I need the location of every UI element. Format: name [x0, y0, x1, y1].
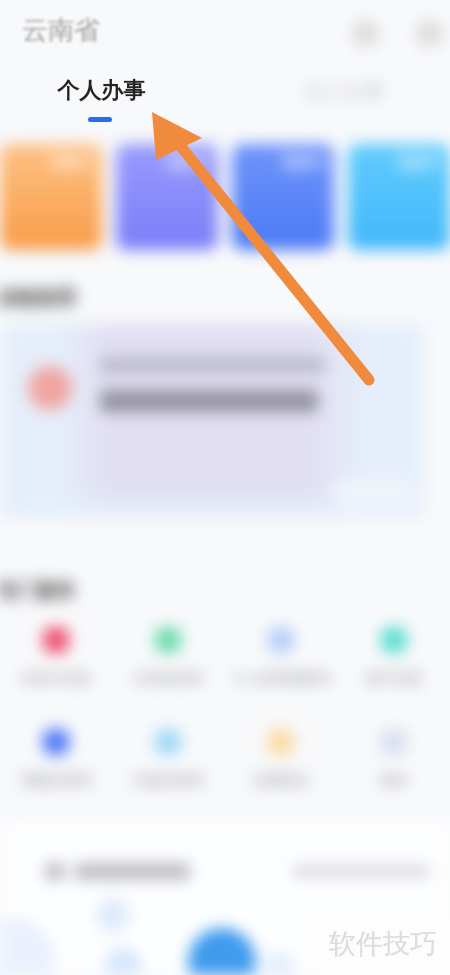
staticText: 热门服务 — [0, 578, 76, 603]
staticText: 驾驶证查询 — [21, 772, 91, 790]
staticText: 电子证照 — [366, 670, 422, 688]
button[interactable]: 公积金查询 — [112, 627, 224, 688]
button[interactable]: 我要评 — [348, 144, 450, 250]
button[interactable]: 个人办事 — [57, 77, 145, 105]
staticText: 我要问 — [282, 154, 324, 172]
button[interactable]: 我要问 — [232, 144, 334, 250]
staticText: 社保卡业务 — [21, 670, 91, 688]
staticText: 我要评 — [398, 154, 440, 172]
button[interactable]: Search — [352, 20, 379, 47]
staticText: 软件技巧 — [329, 927, 437, 961]
button[interactable]: Assistant — [188, 928, 256, 975]
button[interactable]: 更多 — [337, 729, 450, 790]
staticText: 云南省 — [22, 14, 100, 47]
button[interactable]: 交通违法 — [224, 729, 337, 790]
staticText: 智能推荐 — [0, 286, 76, 311]
button[interactable] — [0, 324, 424, 518]
staticText: 我要办 — [50, 154, 92, 172]
button[interactable]: 社保卡业务 — [0, 627, 112, 688]
button[interactable] — [75, 863, 190, 880]
button[interactable]: 我要办 — [0, 144, 102, 250]
button[interactable]: More — [416, 20, 443, 47]
button[interactable]: 行驶证查询 — [112, 729, 224, 790]
staticText: 公积金查询 — [133, 670, 203, 688]
staticText: 个人办事 — [57, 77, 145, 105]
staticText: 交通违法 — [253, 772, 309, 790]
staticText: 个人所得税查询 — [232, 670, 330, 688]
button[interactable] — [45, 863, 65, 880]
button[interactable]: 驾驶证查询 — [0, 729, 112, 790]
button[interactable]: 个人所得税查询 — [224, 627, 337, 688]
button[interactable]: 我要查 — [116, 144, 218, 250]
staticText: 行驶证查询 — [133, 772, 203, 790]
staticText: 我要查 — [166, 154, 208, 172]
staticText: 更多 — [380, 772, 408, 790]
button[interactable]: 电子证照 — [337, 627, 450, 688]
